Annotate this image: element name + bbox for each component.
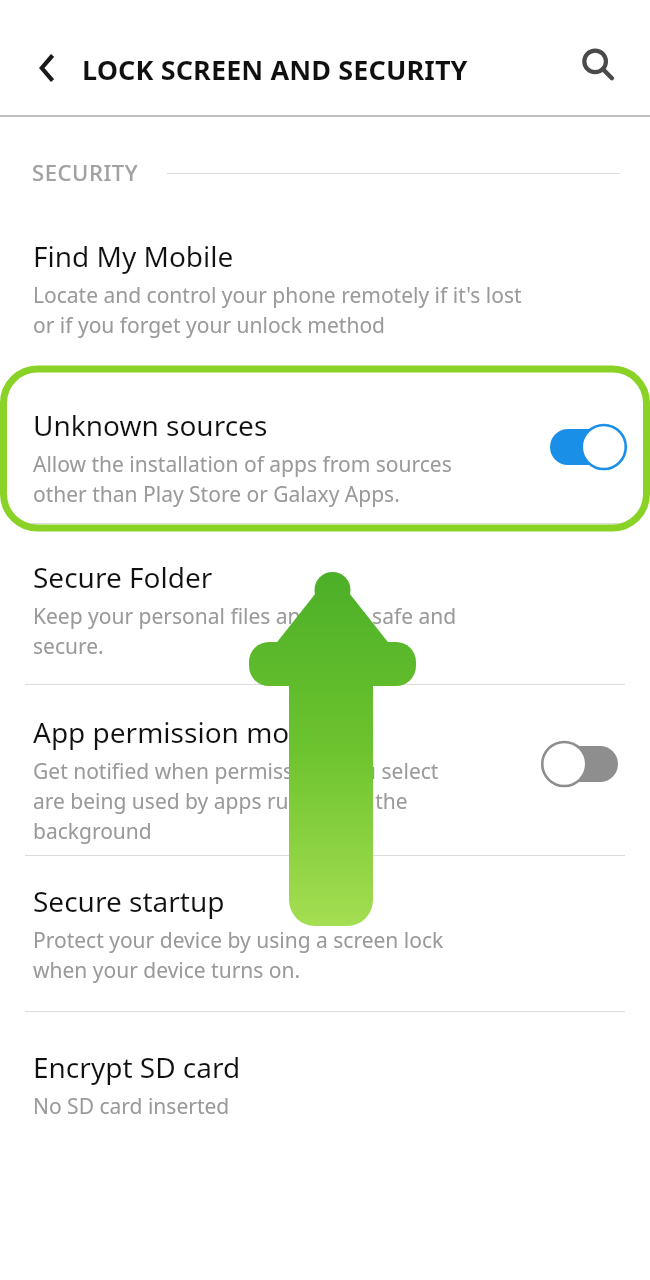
button[interactable]: Search [572,39,624,91]
button[interactable]: Unknown sources toggle, on [548,422,626,472]
staticText: Secure startup [33,882,225,920]
staticText: App permission monitor [33,713,353,751]
button[interactable]: Secure Folder [0,532,650,684]
staticText: Secure Folder [33,558,213,596]
staticText: Get notified when permissions you select [33,757,439,786]
button[interactable]: Unknown sources [0,362,650,532]
staticText: when your device turns on. [33,956,301,985]
staticText: Protect your device by using a screen lo… [33,926,444,955]
button[interactable]: Secure startup [0,856,650,1011]
staticText: or if you forget your unlock method [33,311,386,340]
staticText: SECURITY [32,157,139,187]
button[interactable]: App permission monitor [0,685,650,855]
staticText: Keep your personal files and apps safe a… [33,602,457,631]
staticText: secure. [33,632,104,661]
staticText: Encrypt SD card [33,1048,241,1086]
staticText: other than Play Store or Galaxy Apps. [33,480,400,509]
staticText: LOCK SCREEN AND SECURITY [82,51,468,88]
staticText: background [33,817,152,846]
button[interactable]: Encrypt SD card [0,1012,650,1142]
staticText: No SD card inserted [33,1092,230,1121]
staticText: are being used by apps running in the [33,787,408,816]
button[interactable]: Back [22,43,72,93]
staticText: Locate and control your phone remotely i… [33,281,522,310]
staticText: Allow the installation of apps from sour… [33,450,452,479]
button[interactable]: Find My Mobile [0,207,650,362]
button[interactable]: App permission monitor toggle, off [540,737,622,791]
staticText: Unknown sources [33,406,268,444]
staticText: Find My Mobile [33,237,234,275]
